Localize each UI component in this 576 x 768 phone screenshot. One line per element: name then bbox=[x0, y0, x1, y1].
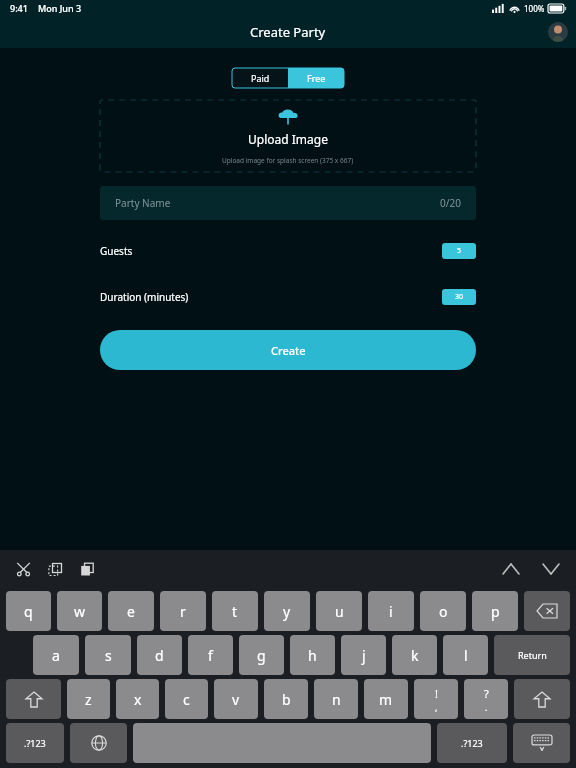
staticText: Duration (minutes) bbox=[100, 290, 189, 304]
button[interactable]: n bbox=[314, 679, 358, 719]
button[interactable]: Party Name bbox=[100, 186, 476, 220]
button[interactable]: m bbox=[364, 679, 408, 719]
staticText: b bbox=[282, 690, 291, 709]
button[interactable]: Cut bbox=[10, 556, 36, 582]
staticText: Create Party bbox=[250, 23, 326, 41]
staticText: h bbox=[308, 646, 317, 665]
button[interactable]: Copy bbox=[42, 556, 68, 582]
button[interactable]: Previous bbox=[496, 554, 526, 584]
button[interactable]: o bbox=[420, 591, 466, 631]
button[interactable]: Backspace bbox=[524, 591, 570, 631]
staticText: j bbox=[362, 646, 366, 665]
button[interactable]: d bbox=[137, 635, 182, 675]
button[interactable]: g bbox=[239, 635, 284, 675]
staticText: n bbox=[332, 690, 341, 709]
staticText: g bbox=[257, 646, 266, 665]
staticText: 9:41 bbox=[10, 2, 28, 14]
staticText: ! bbox=[435, 686, 438, 701]
button[interactable]: k bbox=[392, 635, 437, 675]
button[interactable]: Profile bbox=[548, 22, 568, 42]
staticText: p bbox=[491, 602, 500, 621]
staticText: 0/20 bbox=[440, 196, 461, 210]
staticText: f bbox=[208, 646, 213, 665]
staticText: .?123 bbox=[24, 737, 46, 749]
button[interactable]: p bbox=[472, 591, 518, 631]
staticText: w bbox=[74, 602, 86, 621]
button[interactable]: r bbox=[160, 591, 206, 631]
button[interactable]: e bbox=[108, 591, 154, 631]
staticText: 5 bbox=[457, 246, 462, 256]
staticText: . bbox=[485, 701, 488, 713]
staticText: Paid bbox=[251, 72, 270, 84]
staticText: .?123 bbox=[461, 737, 483, 749]
staticText: u bbox=[335, 602, 344, 621]
staticText: Upload image for splash screen (375 x 66… bbox=[222, 156, 354, 165]
button[interactable]: Next bbox=[536, 554, 566, 584]
button[interactable]: f bbox=[188, 635, 233, 675]
button[interactable]: j bbox=[341, 635, 386, 675]
staticText: i bbox=[389, 602, 393, 621]
staticText: Create bbox=[271, 343, 306, 358]
staticText: 100% bbox=[524, 3, 545, 14]
button[interactable]: u bbox=[316, 591, 362, 631]
staticText: c bbox=[183, 690, 190, 709]
button[interactable]: Upload Image bbox=[100, 100, 476, 172]
staticText: a bbox=[52, 646, 60, 665]
staticText: q bbox=[24, 602, 33, 621]
staticText: e bbox=[127, 602, 135, 621]
staticText: Free bbox=[307, 72, 326, 84]
staticText: r bbox=[180, 602, 186, 621]
staticText: ? bbox=[484, 686, 489, 701]
button[interactable]: q bbox=[6, 591, 51, 631]
button[interactable]: t bbox=[212, 591, 258, 631]
staticText: Return bbox=[518, 649, 547, 661]
button[interactable]: ? bbox=[464, 679, 508, 719]
button[interactable]: 30 bbox=[442, 289, 476, 305]
button[interactable]: Change language bbox=[70, 723, 127, 763]
button[interactable]: z bbox=[67, 679, 110, 719]
button[interactable]: ! bbox=[414, 679, 458, 719]
staticText: x bbox=[134, 690, 142, 709]
staticText: , bbox=[435, 701, 438, 713]
staticText: v bbox=[232, 690, 240, 709]
button[interactable]: h bbox=[290, 635, 335, 675]
staticText: y bbox=[283, 602, 291, 621]
staticText: Mon Jun 3 bbox=[38, 2, 82, 14]
button[interactable]: a bbox=[33, 635, 79, 675]
staticText: 30 bbox=[455, 292, 464, 302]
button[interactable]: i bbox=[368, 591, 414, 631]
button[interactable]: Free bbox=[288, 68, 344, 88]
button[interactable]: c bbox=[165, 679, 208, 719]
staticText: l bbox=[464, 646, 468, 665]
button[interactable]: Hide keyboard bbox=[513, 723, 570, 763]
button[interactable]: l bbox=[443, 635, 488, 675]
button[interactable]: .?123 bbox=[6, 723, 64, 763]
button[interactable]: .?123 bbox=[437, 723, 507, 763]
button[interactable]: x bbox=[116, 679, 159, 719]
staticText: z bbox=[85, 690, 92, 709]
staticText: Guests bbox=[100, 244, 133, 258]
staticText: o bbox=[439, 602, 448, 621]
staticText: k bbox=[411, 646, 419, 665]
button[interactable]: Shift bbox=[6, 679, 61, 719]
staticText: m bbox=[379, 690, 393, 709]
staticText: t bbox=[232, 602, 238, 621]
button[interactable]: b bbox=[264, 679, 308, 719]
button[interactable]: Create bbox=[100, 330, 476, 370]
button[interactable]: w bbox=[57, 591, 102, 631]
button[interactable]: 5 bbox=[442, 243, 476, 259]
staticText: d bbox=[155, 646, 164, 665]
staticText: Party Name bbox=[115, 196, 171, 210]
button[interactable]: Paid bbox=[232, 68, 288, 88]
button[interactable]: Return bbox=[494, 635, 570, 675]
button[interactable]: Shift bbox=[514, 679, 570, 719]
button[interactable]: v bbox=[214, 679, 258, 719]
staticText: s bbox=[105, 646, 112, 665]
staticText: Upload Image bbox=[248, 131, 328, 147]
button[interactable]: s bbox=[85, 635, 131, 675]
button[interactable]: Paste bbox=[74, 556, 100, 582]
button[interactable]: y bbox=[264, 591, 310, 631]
